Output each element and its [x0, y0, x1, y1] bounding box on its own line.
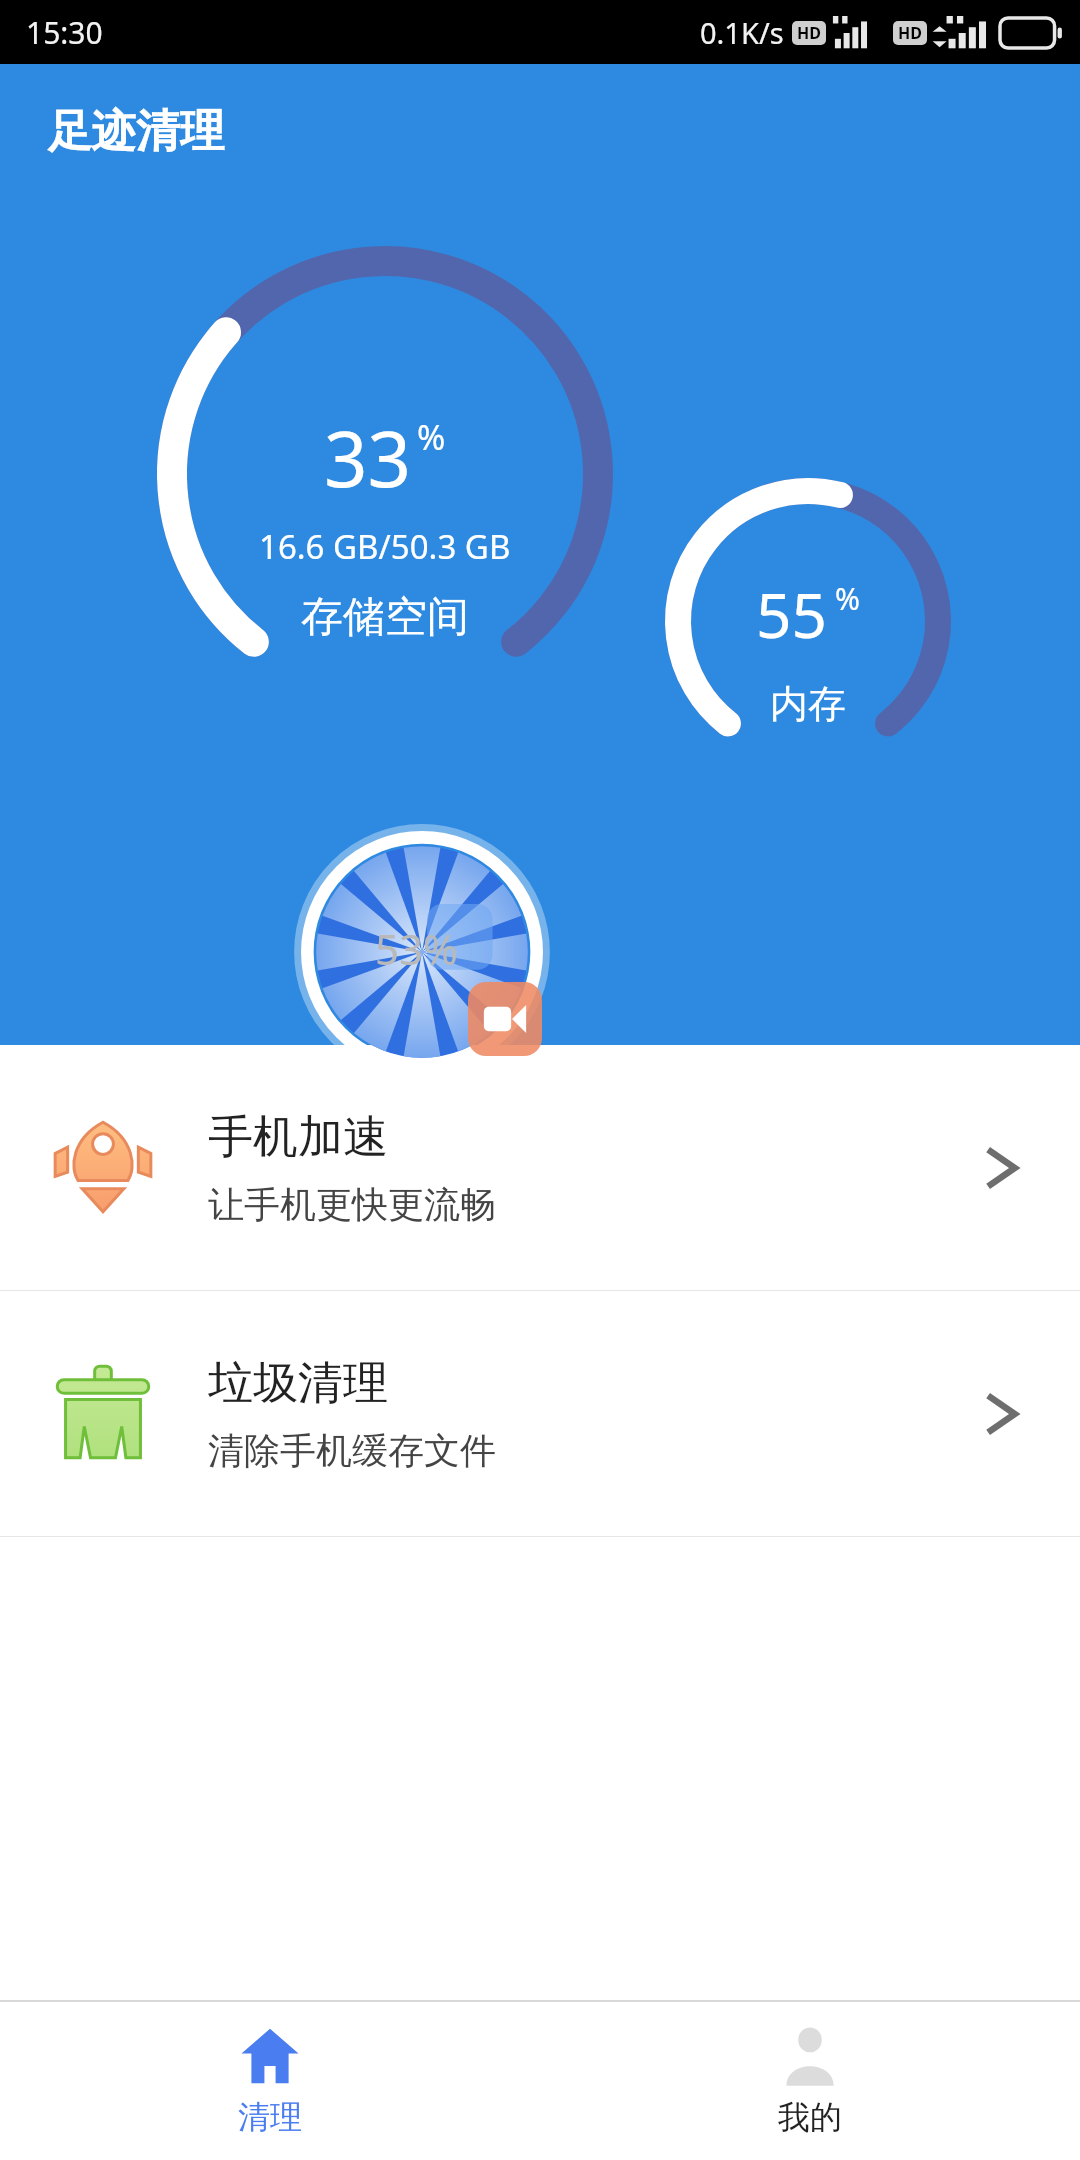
button[interactable]: 手机加速 — [0, 1045, 1080, 1290]
staticText: 内存 — [770, 680, 846, 728]
button[interactable]: 清理 — [0, 2002, 540, 2160]
button[interactable]: 垃圾清理 — [0, 1291, 1080, 1536]
staticText: HD — [797, 22, 821, 44]
staticText: 手机加速 — [208, 1109, 388, 1166]
staticText: 55 — [756, 572, 827, 656]
staticText: 足迹清理 — [48, 104, 224, 159]
staticText: 让手机更快更流畅 — [208, 1182, 496, 1227]
staticText: 清除手机缓存文件 — [208, 1428, 496, 1473]
staticText: % — [835, 578, 860, 619]
staticText: 53% — [375, 920, 458, 977]
staticText: 15:30 — [26, 12, 103, 53]
staticText: 0.1K/s — [700, 13, 784, 52]
staticText: 我的 — [778, 2097, 842, 2137]
staticText: % — [417, 414, 446, 460]
other: 视频 — [468, 982, 542, 1056]
staticText: HD — [898, 22, 922, 44]
staticText: 垃圾清理 — [208, 1355, 388, 1412]
button[interactable]: 我的 — [540, 2002, 1080, 2160]
other: 手机加速 — [48, 1113, 158, 1223]
staticText: 清理 — [238, 2097, 302, 2137]
other: 垃圾清理 — [48, 1359, 158, 1469]
staticText: 存储空间 — [301, 591, 469, 644]
staticText: 33 — [324, 406, 411, 510]
staticText: 16.6 GB/50.3 GB — [259, 524, 511, 569]
